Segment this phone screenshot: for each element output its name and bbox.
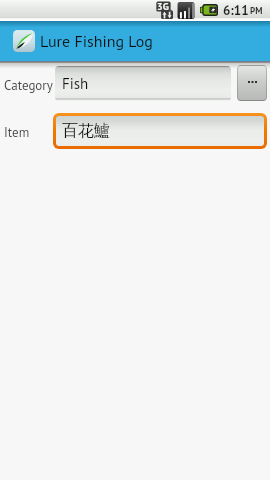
staticText: Fish	[62, 74, 89, 93]
staticText: Category	[4, 77, 53, 94]
staticText: Lure Fishing Log	[40, 31, 153, 52]
staticText: Item	[4, 124, 30, 141]
button[interactable]: More options	[237, 65, 267, 101]
staticText: 百花鱸	[62, 121, 110, 141]
staticText: PM	[250, 5, 263, 17]
button[interactable]: Fish	[55, 66, 231, 101]
staticText: 6:11	[223, 2, 249, 19]
staticText: 3G	[157, 0, 169, 13]
button[interactable]: 百花鱸	[56, 116, 264, 146]
